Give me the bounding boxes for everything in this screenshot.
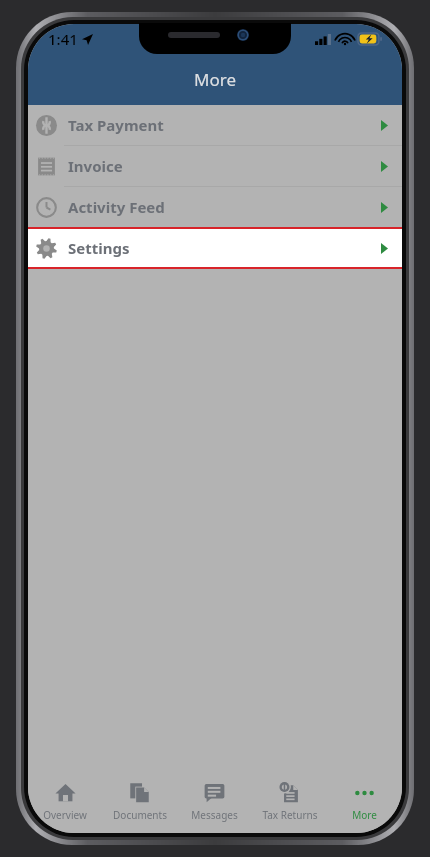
button[interactable]: Overview — [28, 773, 102, 833]
button[interactable]: Settings — [28, 229, 402, 267]
button[interactable]: More — [327, 773, 402, 833]
staticText: Invoice — [68, 156, 123, 176]
staticText: Documents — [113, 808, 167, 822]
staticText: Activity Feed — [68, 197, 165, 217]
staticText: Messages — [191, 808, 238, 822]
staticText: Tax Payment — [68, 115, 164, 135]
other: Tax Returns — [279, 782, 300, 803]
button[interactable]: Tax Returns — [252, 773, 327, 833]
button[interactable]: Activity Feed — [28, 187, 402, 227]
button[interactable]: Documents — [102, 773, 177, 833]
button[interactable]: Tax Payment — [28, 105, 402, 145]
staticText: Tax Returns — [262, 808, 318, 822]
other: Documents — [129, 782, 150, 803]
other: More — [354, 782, 375, 803]
button[interactable]: Messages — [177, 773, 252, 833]
staticText: Settings — [68, 238, 130, 258]
staticText: 1:41 — [48, 29, 78, 49]
staticText: Overview — [43, 808, 87, 822]
staticText: More — [352, 808, 377, 822]
button[interactable]: Invoice — [28, 146, 402, 186]
other: Messages — [204, 782, 225, 803]
other: Overview — [55, 782, 76, 803]
staticText: More — [194, 68, 236, 91]
